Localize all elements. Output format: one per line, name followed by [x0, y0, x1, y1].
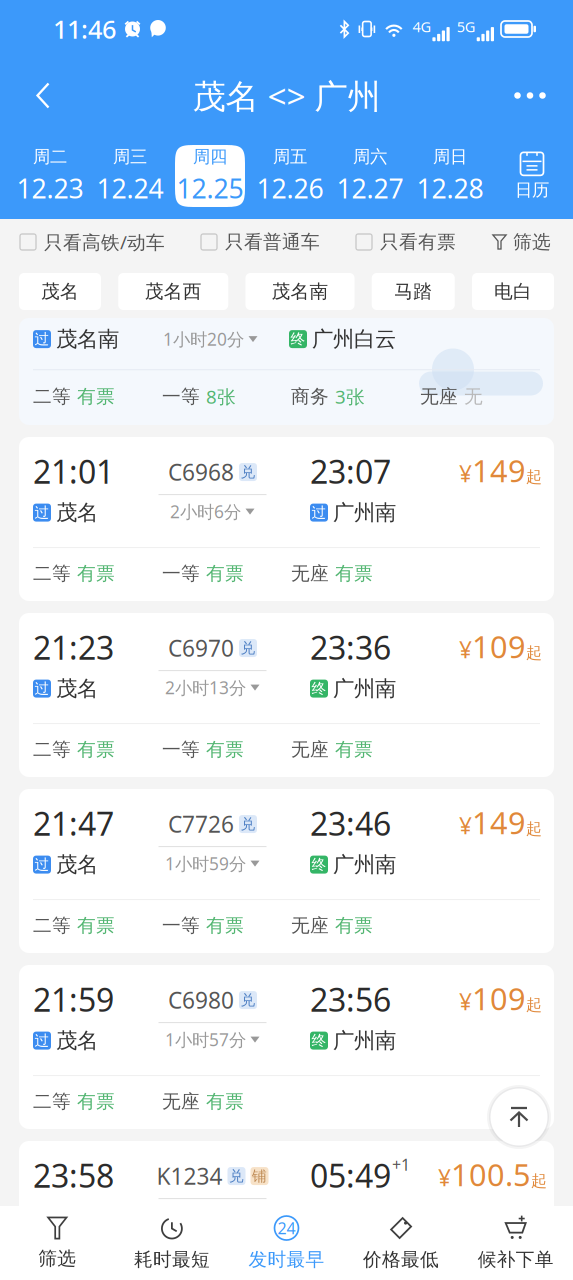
staticText: 兑 [229, 1167, 244, 1185]
staticText: 兑 [240, 991, 255, 1009]
staticText: 100.5 [451, 1154, 531, 1195]
staticText: 23:46 [310, 802, 391, 844]
staticText: 茂名 [56, 851, 98, 878]
staticText: 周四 [193, 146, 227, 167]
staticText: 茂名 [56, 675, 98, 702]
staticText: 有票 [206, 562, 244, 585]
button[interactable]: 过 [19, 318, 554, 425]
staticText: 23:58 [33, 1154, 114, 1196]
staticText: 1小时59分 [165, 852, 246, 875]
button[interactable]: 周四 [170, 140, 250, 212]
button[interactable]: 周二 [10, 140, 90, 212]
staticText: 有票 [335, 914, 373, 937]
staticText: 3张 [335, 384, 365, 409]
staticText: 5小时51分 [165, 1204, 246, 1227]
button[interactable]: 候补下单 [458, 1206, 573, 1280]
staticText: 149 [472, 450, 526, 491]
button[interactable]: 筛选 [0, 1206, 115, 1280]
staticText: 无座 [291, 738, 329, 761]
staticText: 起 [526, 467, 542, 487]
button[interactable]: 周日 [410, 140, 490, 212]
button[interactable]: 茂名西 [118, 273, 228, 310]
staticText: 2小时13分 [165, 676, 246, 699]
button[interactable]: 价格最低 [344, 1206, 458, 1280]
staticText: 一等 [162, 738, 200, 761]
staticText: 起 [526, 819, 542, 839]
staticText: 1小时57分 [165, 1028, 246, 1051]
button[interactable]: 21:23 [19, 613, 554, 777]
staticText: 有票 [335, 562, 373, 585]
button[interactable]: 24 [229, 1206, 344, 1280]
staticText: 有票 [77, 914, 115, 937]
staticText: 有票 [77, 738, 115, 761]
staticText: ¥ [438, 1162, 451, 1192]
staticText: 一等 [162, 914, 200, 937]
staticText: 日历 [515, 179, 549, 201]
staticText: +1 [392, 1154, 410, 1175]
button[interactable]: 只看高铁/动车 [20, 230, 165, 254]
button[interactable]: 电白 [472, 273, 554, 310]
staticText: 广州南 [333, 851, 396, 878]
button[interactable]: 更多 [505, 70, 555, 120]
button[interactable]: 周三 [90, 140, 170, 212]
staticText: 周二 [33, 146, 67, 167]
staticText: 茂名 [56, 1027, 98, 1054]
staticText: 一等 [162, 385, 200, 408]
staticText: 广州南 [333, 1027, 396, 1054]
staticText: 筛选 [513, 230, 551, 253]
staticText: 12.24 [96, 170, 163, 206]
staticText: 11:46 [53, 12, 116, 46]
button[interactable]: 筛选 [492, 230, 551, 253]
button[interactable]: 周六 [330, 140, 410, 212]
staticText: 广州南 [333, 499, 396, 526]
button[interactable]: 21:47 [19, 789, 554, 953]
staticText: 23:36 [310, 626, 391, 668]
staticText: 21:23 [33, 626, 114, 668]
staticText: 终 [311, 856, 326, 874]
staticText: 109 [472, 626, 526, 667]
staticText: 有票 [77, 385, 115, 408]
staticText: 茂名 [41, 280, 79, 303]
staticText: 有票 [206, 1090, 244, 1113]
staticText: 有票 [77, 1090, 115, 1113]
staticText: 茂名南 [56, 326, 119, 352]
button[interactable]: 只看普通车 [201, 230, 320, 253]
staticText: 终 [290, 330, 305, 348]
staticText: 21:47 [33, 802, 114, 844]
staticText: 茂名 [56, 499, 98, 526]
button[interactable]: 茂名 [19, 273, 101, 310]
staticText: 候补下单 [478, 1248, 554, 1271]
staticText: 21:59 [33, 978, 114, 1020]
button[interactable]: 周五 [250, 140, 330, 212]
button[interactable]: 茂名南 [245, 273, 354, 310]
button[interactable]: 21:59 [19, 965, 554, 1129]
staticText: 无座 [162, 1090, 200, 1113]
button[interactable]: 马踏 [372, 273, 455, 310]
staticText: ¥ [459, 458, 472, 488]
button[interactable]: 耗时最短 [115, 1206, 229, 1280]
staticText: ¥ [459, 986, 472, 1016]
staticText: 茂名 <> 广州 [192, 73, 380, 118]
staticText: 5G [457, 17, 476, 36]
staticText: 12.28 [416, 170, 483, 206]
staticText: 周六 [353, 146, 387, 167]
staticText: 茂名西 [145, 280, 202, 303]
button[interactable]: 返回顶部 [487, 1085, 551, 1149]
staticText: 过 [34, 504, 49, 522]
staticText: 兑 [240, 815, 255, 833]
staticText: 有票 [77, 562, 115, 585]
staticText: 1小时20分 [163, 328, 244, 351]
button[interactable]: 日历 [503, 145, 561, 207]
staticText: 二等 [33, 385, 71, 408]
staticText: 马踏 [394, 280, 432, 303]
staticText: 铺 [252, 1167, 267, 1185]
button[interactable]: 21:01 [19, 437, 554, 601]
button[interactable]: 只看有票 [356, 230, 456, 253]
staticText: 过 [34, 680, 49, 698]
button[interactable]: 返回 [18, 70, 68, 120]
staticText: 广州白云 [312, 326, 396, 352]
staticText: 周日 [433, 146, 467, 167]
staticText: 发时最早 [248, 1248, 324, 1271]
staticText: 只看普通车 [225, 230, 320, 253]
staticText: 4G [412, 17, 431, 36]
